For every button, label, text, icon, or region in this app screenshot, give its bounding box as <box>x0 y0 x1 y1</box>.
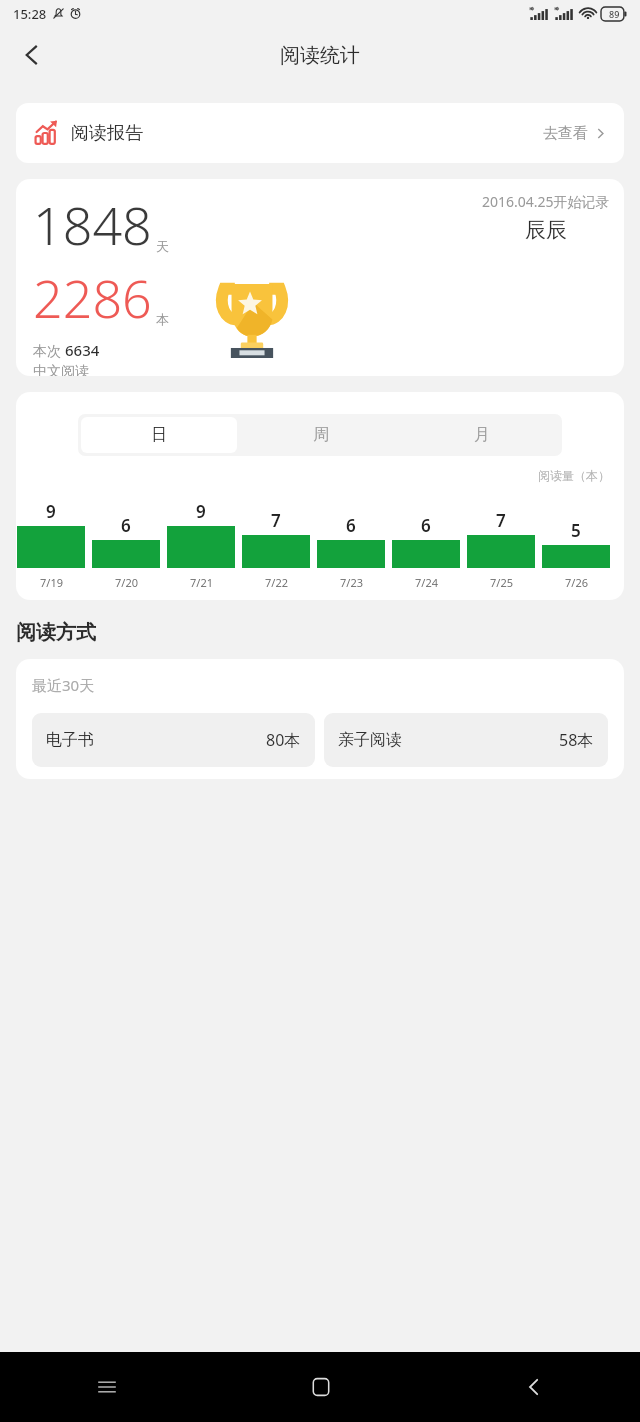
staticText: 6 <box>121 514 131 537</box>
staticText: 2286 <box>33 262 152 333</box>
staticText: 阅读报告 <box>71 122 143 145</box>
staticText: 本 <box>156 311 169 327</box>
staticText: 7 <box>496 509 506 532</box>
staticText: 1848 <box>33 189 152 260</box>
staticText: 5 <box>571 519 581 542</box>
staticText: 7/23 <box>340 575 363 590</box>
staticText: 7/21 <box>190 575 213 590</box>
staticText: 6 <box>421 514 431 537</box>
button[interactable]: 阅读报告 <box>16 103 624 163</box>
button[interactable]: Home <box>214 1352 427 1422</box>
staticText: 7/25 <box>490 575 513 590</box>
staticText: 7 <box>271 509 281 532</box>
staticText: 7/26 <box>565 575 588 590</box>
staticText: 15:28 <box>13 5 47 23</box>
staticText: 天 <box>156 238 169 254</box>
button[interactable]: 日 <box>81 417 237 453</box>
staticText: 阅读量（本） <box>538 468 610 483</box>
staticText: 月 <box>474 425 490 445</box>
button[interactable]: Back <box>427 1352 640 1422</box>
staticText: 9 <box>46 500 56 523</box>
staticText: 7/22 <box>265 575 288 590</box>
staticText: 7/20 <box>115 575 138 590</box>
staticText: 80本 <box>266 729 301 751</box>
staticText: 阅读统计 <box>280 43 360 68</box>
button[interactable]: 月 <box>404 417 559 453</box>
staticText: 7/19 <box>40 575 63 590</box>
staticText: 阅读方式 <box>16 620 96 645</box>
staticText: 亲子阅读 <box>338 730 402 750</box>
button[interactable]: 亲子阅读 <box>324 713 608 767</box>
staticText: 6634 <box>65 340 100 360</box>
staticText: 2016.04.25开始记录 <box>482 192 610 211</box>
staticText: 电子书 <box>46 730 94 750</box>
staticText: 去查看 <box>543 124 588 143</box>
staticText: 89 <box>609 8 620 20</box>
button[interactable]: Recents <box>0 1352 214 1422</box>
staticText: 9 <box>196 500 206 523</box>
button[interactable]: 电子书 <box>32 713 315 767</box>
staticText: 中文阅读 <box>33 363 89 376</box>
staticText: 本次 <box>33 341 65 360</box>
staticText: 日 <box>151 425 167 445</box>
staticText: 7/24 <box>415 575 438 590</box>
staticText: 最近30天 <box>32 675 95 695</box>
button[interactable]: 周 <box>243 417 398 453</box>
staticText: 58本 <box>559 729 594 751</box>
button[interactable]: Back <box>6 29 58 81</box>
staticText: 6 <box>346 514 356 537</box>
staticText: 周 <box>313 425 329 445</box>
staticText: 辰辰 <box>525 217 567 243</box>
